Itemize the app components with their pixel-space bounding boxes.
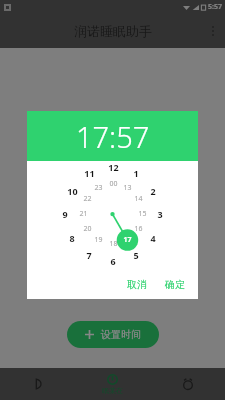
staticText: 00 <box>109 179 118 189</box>
staticText: 8 <box>69 232 75 244</box>
staticText: 3 <box>157 208 163 220</box>
staticText: 眠某在 <box>102 386 123 395</box>
staticText: 16 <box>134 224 143 234</box>
staticText: 13 <box>123 183 132 193</box>
staticText: 5:57 <box>208 2 222 12</box>
button[interactable]: Now <box>75 368 150 400</box>
staticText: 17 <box>123 235 132 245</box>
staticText: 23 <box>94 183 103 193</box>
staticText: 7 <box>86 249 92 261</box>
button[interactable]: 取消 <box>120 274 154 295</box>
staticText: 15 <box>138 209 147 219</box>
staticText: 22 <box>83 194 92 204</box>
staticText: 1 <box>133 167 139 179</box>
staticText: 18 <box>109 239 118 249</box>
staticText: 14 <box>134 194 143 204</box>
button[interactable]: 设置时间 <box>67 321 159 348</box>
staticText: 确定 <box>165 278 185 291</box>
staticText: 9 <box>62 208 68 220</box>
staticText: 11 <box>84 167 95 179</box>
staticText: 10 <box>67 185 78 197</box>
staticText: 21 <box>79 209 88 219</box>
staticText: 6 <box>110 255 116 267</box>
button[interactable]: 确定 <box>158 274 192 295</box>
staticText: 20 <box>83 224 92 234</box>
staticText: 17:57 <box>76 117 150 156</box>
staticText: 取消 <box>127 278 147 291</box>
staticText: 润诺睡眠助手 <box>74 23 152 39</box>
staticText: 设置时间 <box>101 328 141 341</box>
staticText: 12 <box>108 161 119 173</box>
staticText: 2 <box>150 185 156 197</box>
staticText: 5 <box>133 249 139 261</box>
staticText: 19 <box>94 235 103 245</box>
staticText: 4 <box>150 232 156 244</box>
